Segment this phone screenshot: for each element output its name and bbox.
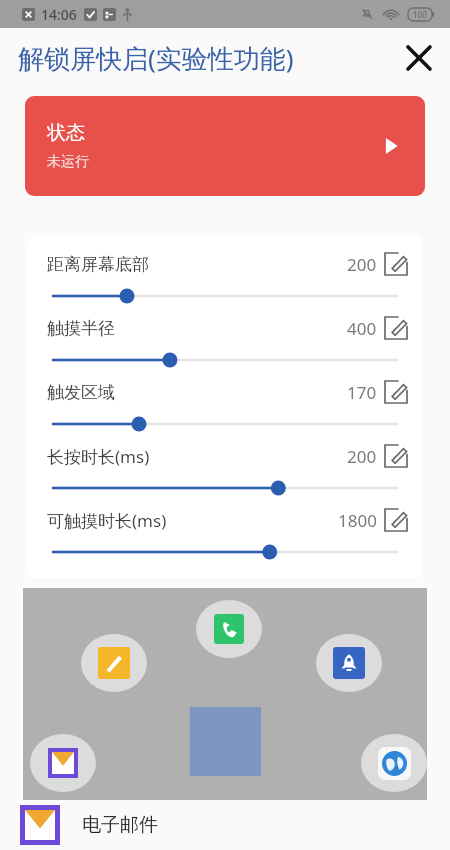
staticText: 触发区域 <box>47 382 115 403</box>
staticText: 可触摸时长(ms) <box>47 509 167 532</box>
button[interactable]: Edit 可触摸时长(ms) <box>383 507 409 533</box>
staticText: 100 <box>413 9 427 20</box>
button[interactable]: 可触摸时长(ms) <box>27 502 423 566</box>
staticText: 电子邮件 <box>82 813 158 837</box>
staticText: 400 <box>347 317 377 340</box>
staticText: 1800 <box>338 509 377 532</box>
button[interactable]: 电子邮件 <box>0 800 450 850</box>
staticText: 14:06 <box>41 5 77 24</box>
button[interactable]: 触摸半径 <box>27 310 423 374</box>
staticText: 200 <box>347 253 377 276</box>
button[interactable]: 状态 <box>25 96 425 196</box>
staticText: 未运行 <box>47 153 89 171</box>
button[interactable]: 距离屏幕底部 <box>27 246 423 310</box>
button[interactable]: 长按时长(ms) <box>27 438 423 502</box>
staticText: 触摸半径 <box>47 318 115 339</box>
staticText: 距离屏幕底部 <box>47 254 149 275</box>
button[interactable]: 触发区域 <box>27 374 423 438</box>
staticText: 长按时长(ms) <box>47 445 150 468</box>
staticText: 状态 <box>47 121 85 145</box>
button[interactable]: Edit 距离屏幕底部 <box>383 251 409 277</box>
staticText: 解锁屏快启(实验性功能) <box>18 40 294 76</box>
button[interactable]: Edit 触发区域 <box>383 379 409 405</box>
button[interactable]: Close <box>400 39 438 77</box>
staticText: 170 <box>347 381 377 404</box>
staticText: 200 <box>347 445 377 468</box>
button[interactable]: Edit 触摸半径 <box>383 315 409 341</box>
button[interactable]: Edit 长按时长(ms) <box>383 443 409 469</box>
